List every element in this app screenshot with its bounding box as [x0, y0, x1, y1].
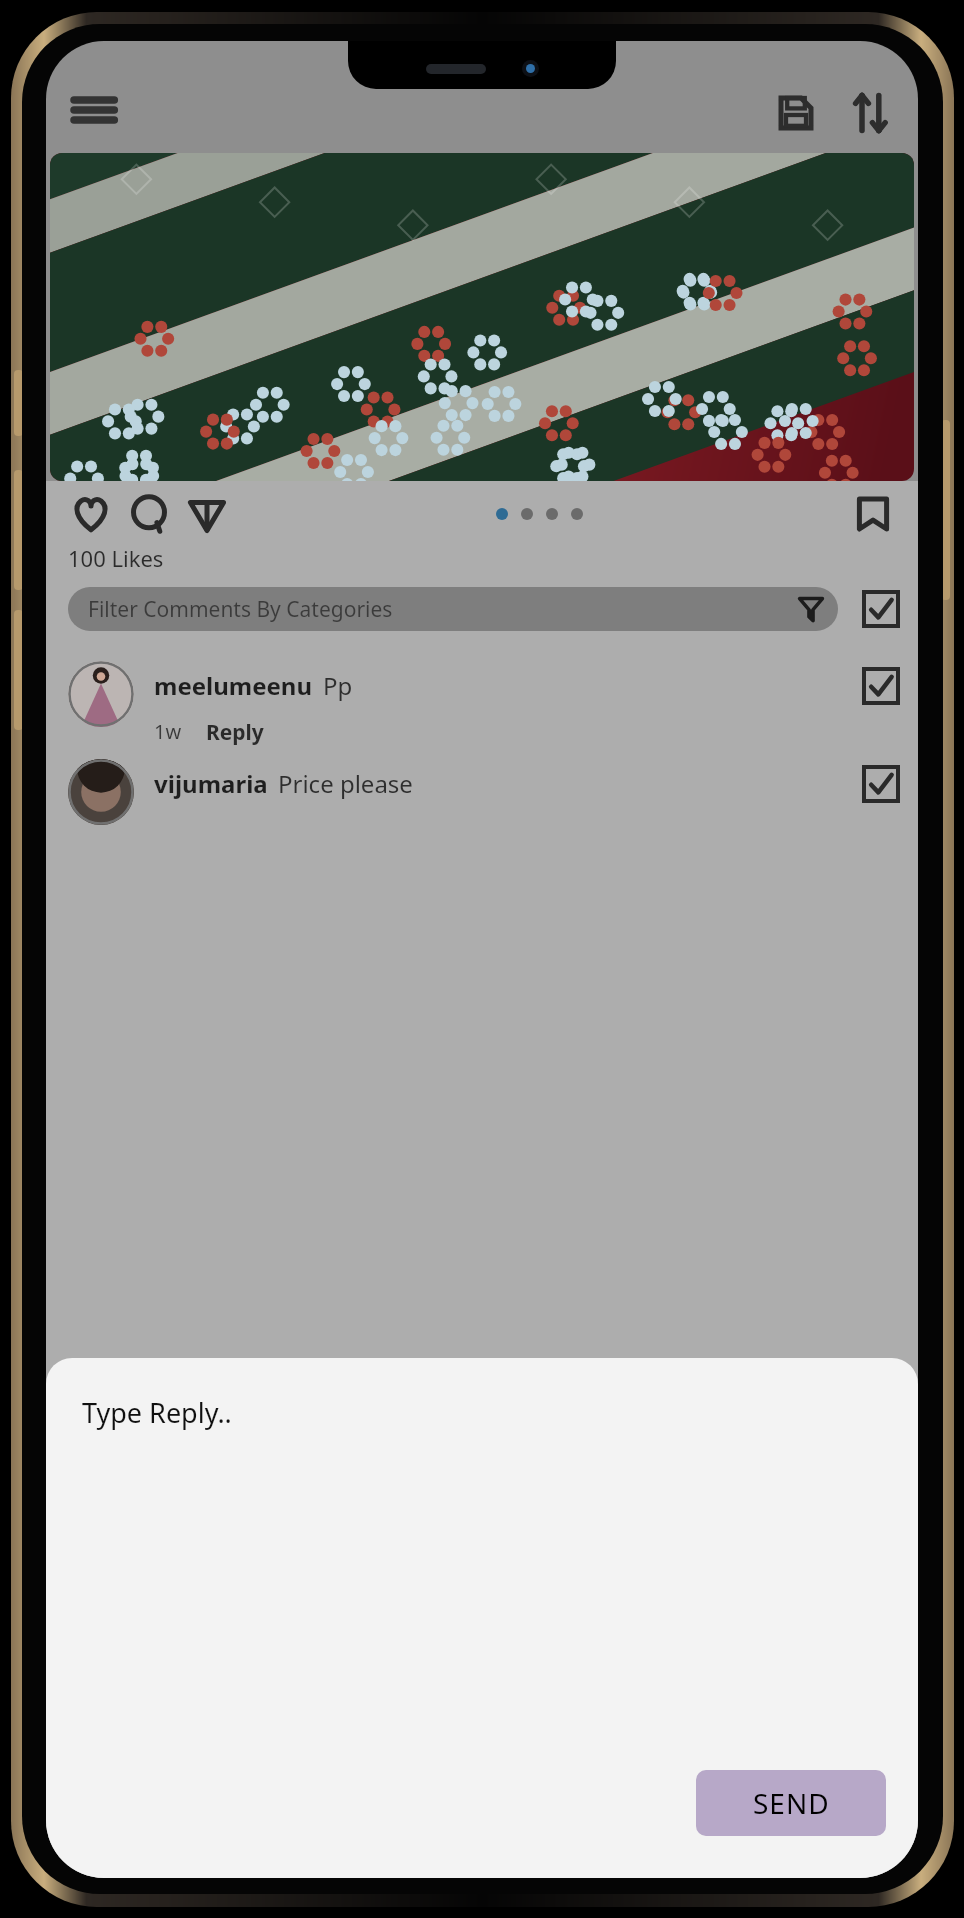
button[interactable]: Filter Comments By Categories	[68, 587, 838, 631]
staticText: SEND	[753, 1784, 830, 1822]
staticText: Reply	[206, 718, 264, 747]
button[interactable]: Select comment	[862, 667, 900, 705]
button[interactable]: Save	[768, 85, 824, 141]
staticText: Type Reply..	[82, 1394, 232, 1431]
button[interactable]: Select all	[862, 590, 900, 628]
button[interactable]: Select comment	[862, 765, 900, 803]
button[interactable]: meelumeenu	[46, 657, 918, 747]
staticText: vijumaria	[154, 767, 268, 800]
button[interactable]: Comment	[124, 489, 174, 539]
staticText: 100 Likes	[68, 543, 164, 573]
staticText: 1w	[154, 718, 182, 745]
button[interactable]: vijumaria	[46, 755, 918, 825]
button[interactable]: SEND	[696, 1770, 886, 1836]
button[interactable]: Share	[182, 489, 232, 539]
staticText: Pp	[323, 669, 353, 702]
button[interactable]: Sort	[842, 85, 898, 141]
staticText: meelumeenu	[154, 669, 313, 702]
button[interactable]: Bookmark	[848, 489, 898, 539]
button[interactable]: Like	[66, 489, 116, 539]
staticText: Filter Comments By Categories	[88, 595, 798, 624]
staticText: Price please	[278, 767, 413, 800]
button[interactable]: Menu	[66, 81, 124, 139]
